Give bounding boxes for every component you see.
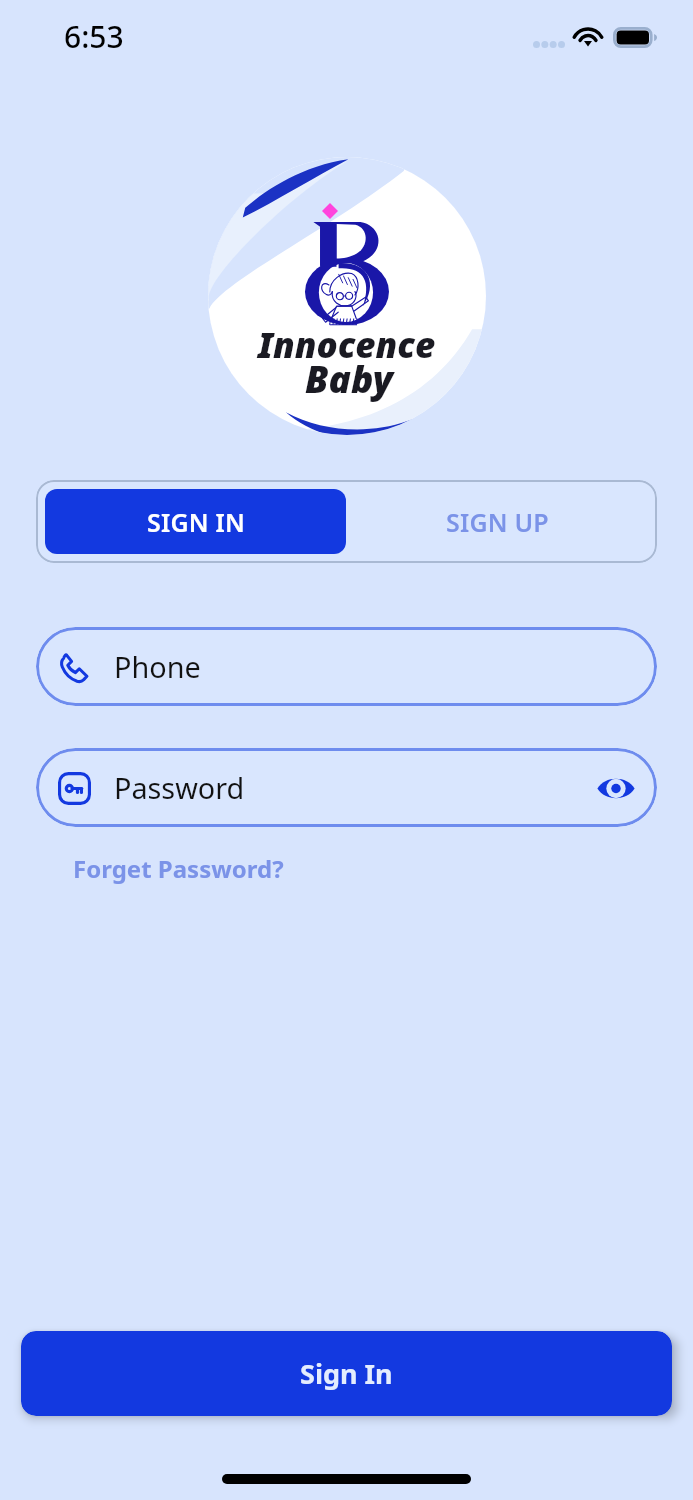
- staticText: Innocence: [258, 321, 436, 369]
- button[interactable]: Sign In: [21, 1331, 672, 1416]
- button[interactable]: SIGN UP: [346, 489, 648, 554]
- staticText: Phone: [114, 647, 201, 686]
- button[interactable]: Password: [36, 748, 657, 827]
- staticText: Baby: [305, 353, 393, 403]
- staticText: Sign In: [300, 1355, 393, 1392]
- staticText: Password: [114, 768, 245, 807]
- staticText: SIGN UP: [446, 505, 549, 539]
- button[interactable]: Forget Password?: [60, 848, 297, 889]
- staticText: Forget Password?: [73, 852, 284, 885]
- staticText: 6:53: [64, 16, 124, 57]
- button[interactable]: Phone: [36, 627, 657, 706]
- staticText: SIGN IN: [147, 505, 245, 539]
- button[interactable]: SIGN IN: [45, 489, 346, 554]
- button[interactable]: Show password: [594, 766, 638, 810]
